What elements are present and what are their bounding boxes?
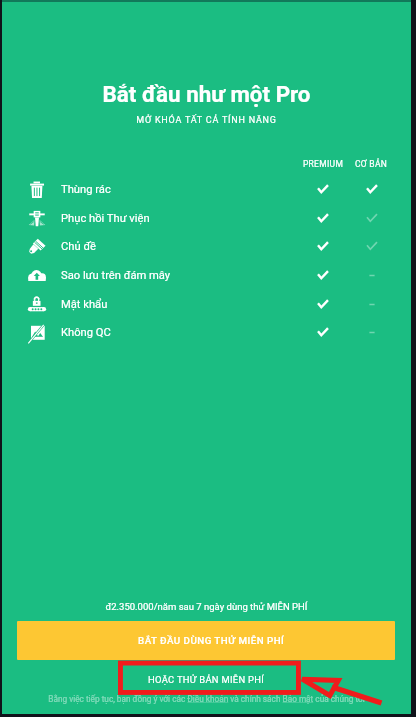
- staticText: CƠ BẢN: [341, 159, 401, 169]
- staticText: đ2.350.000/năm sau 7 ngày dùng thử MIỄN …: [2, 601, 411, 612]
- staticText: BẮT ĐẦU DÙNG THỬ MIỄN PHÍ: [138, 635, 285, 646]
- staticText: Mật khẩu: [61, 298, 108, 311]
- staticText: HOẶC THỬ BẢN MIỄN PHÍ: [148, 674, 265, 685]
- button[interactable]: BẮT ĐẦU DÙNG THỬ MIỄN PHÍ: [17, 621, 395, 660]
- staticText: Bằng việc tiếp tục, bạn đồng ý với các Đ…: [2, 694, 411, 704]
- button[interactable]: Chủ đề: [2, 232, 411, 261]
- staticText: Phục hồi Thư viện: [61, 212, 150, 225]
- button[interactable]: Không QC: [2, 318, 411, 347]
- button[interactable]: HOẶC THỬ BẢN MIỄN PHÍ: [134, 664, 279, 694]
- staticText: PREMIUM: [288, 159, 358, 169]
- button[interactable]: Mật khẩu: [2, 290, 411, 319]
- staticText: Bắt đầu như một Pro: [2, 81, 411, 107]
- staticText: Không QC: [61, 326, 111, 339]
- button[interactable]: Thùng rác: [2, 175, 411, 204]
- staticText: Thùng rác: [61, 183, 111, 196]
- button[interactable]: Sao lưu trên đám mây: [2, 261, 411, 290]
- staticText: Chủ đề: [61, 240, 97, 253]
- button[interactable]: Phục hồi Thư viện: [2, 204, 411, 233]
- staticText: Sao lưu trên đám mây: [61, 269, 171, 282]
- staticText: MỞ KHÓA TẤT CẢ TÍNH NĂNG: [2, 115, 411, 126]
